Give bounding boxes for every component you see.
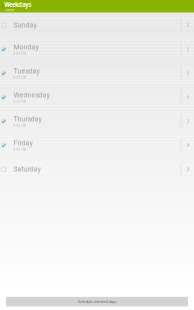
staticText: Wednesday [14, 91, 50, 99]
button[interactable]: Saturday [0, 157, 194, 181]
button[interactable]: Tuesday [0, 61, 194, 85]
staticText: Monday [14, 43, 39, 51]
staticText: 8:00 PM [14, 148, 26, 151]
staticText: 8:00 PM [14, 124, 26, 127]
button[interactable]: Monday [0, 37, 194, 61]
button[interactable]: Friday [0, 133, 194, 157]
staticText: Saturday [14, 165, 41, 173]
staticText: Schedule [4, 9, 14, 12]
staticText: Sunday [14, 21, 37, 29]
button[interactable]: Wednesday [0, 85, 194, 109]
staticText: Schedule checked days [77, 299, 116, 304]
staticText: Thursday [14, 115, 42, 123]
staticText: 8:00 PM [14, 52, 26, 55]
button[interactable]: Schedule checked days [6, 297, 188, 306]
staticText: Tuesday [14, 67, 40, 75]
staticText: Friday [14, 139, 33, 147]
button[interactable]: Back [0, 0, 4, 12]
button[interactable]: Sunday [0, 13, 194, 37]
staticText: 8:00 PM [14, 100, 26, 103]
button[interactable]: Thursday [0, 109, 194, 133]
staticText: Weekdays [4, 1, 31, 8]
staticText: 8:00 PM [14, 76, 26, 79]
